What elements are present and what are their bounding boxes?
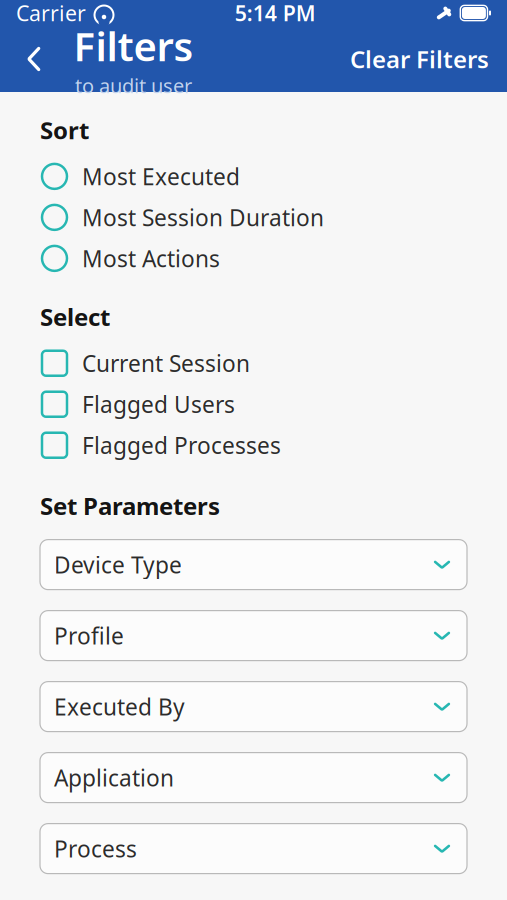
- staticText: to audit user: [75, 72, 192, 99]
- button[interactable]: Most Actions: [0, 238, 507, 279]
- staticText: Most Actions: [82, 243, 220, 273]
- button[interactable]: Flagged Users: [0, 384, 507, 425]
- staticText: 5:14 PM: [235, 0, 316, 27]
- staticText: Select: [40, 301, 110, 333]
- button[interactable]: Clear Filters: [344, 33, 495, 85]
- button[interactable]: Back: [12, 33, 56, 85]
- button[interactable]: Current Session: [0, 343, 507, 384]
- button[interactable]: Executed By: [40, 682, 467, 732]
- button[interactable]: Most Session Duration: [0, 197, 507, 238]
- staticText: Filters: [73, 19, 193, 72]
- button[interactable]: Process: [40, 824, 467, 874]
- staticText: Most Session Duration: [82, 202, 324, 232]
- button[interactable]: Device Type: [40, 540, 467, 590]
- staticText: Set Parameters: [40, 490, 220, 522]
- button[interactable]: Flagged Processes: [0, 425, 507, 466]
- staticText: Carrier: [16, 0, 86, 27]
- staticText: Executed By: [54, 692, 185, 722]
- staticText: Device Type: [54, 550, 182, 580]
- staticText: Sort: [40, 114, 89, 146]
- staticText: Current Session: [82, 348, 250, 378]
- button[interactable]: Most Executed: [0, 156, 507, 197]
- staticText: Most Executed: [82, 161, 240, 191]
- staticText: Process: [54, 834, 137, 864]
- staticText: Flagged Processes: [82, 430, 281, 460]
- staticText: Application: [54, 763, 174, 793]
- staticText: Profile: [54, 621, 124, 651]
- button[interactable]: Profile: [40, 611, 467, 661]
- staticText: Clear Filters: [350, 43, 489, 75]
- staticText: Flagged Users: [82, 389, 235, 419]
- button[interactable]: Application: [40, 753, 467, 803]
